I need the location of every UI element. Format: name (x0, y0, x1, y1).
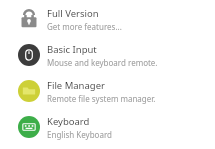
button[interactable]: File Manager (0, 73, 215, 109)
staticText: Keyboard (47, 115, 90, 128)
button[interactable]: Basic Input (0, 37, 215, 73)
staticText: Full Version (47, 7, 99, 20)
staticText: Mouse and keyboard remote. (47, 57, 158, 68)
button[interactable]: Full Version (0, 1, 215, 37)
staticText: File Manager (47, 79, 105, 92)
staticText: English Keyboard (47, 129, 112, 140)
staticText: Basic Input (47, 43, 97, 56)
staticText: Get more features... (47, 21, 122, 32)
button[interactable]: Keyboard (0, 109, 215, 145)
staticText: Remote file system manager. (47, 93, 156, 104)
